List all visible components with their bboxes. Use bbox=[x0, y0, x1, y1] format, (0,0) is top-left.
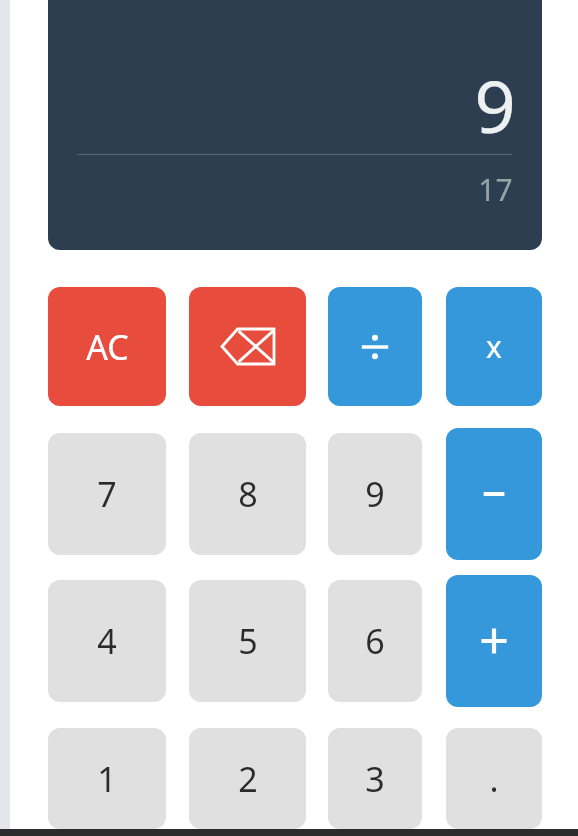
staticText: x bbox=[486, 326, 502, 367]
staticText: 7 bbox=[97, 471, 117, 517]
staticText: 9 bbox=[365, 471, 385, 517]
button[interactable]: Plus bbox=[446, 575, 542, 707]
staticText: 4 bbox=[97, 618, 117, 664]
staticText: 8 bbox=[238, 471, 258, 517]
button[interactable]: 1 bbox=[48, 728, 166, 829]
staticText: AC bbox=[86, 324, 129, 370]
button[interactable]: 8 bbox=[189, 433, 306, 555]
staticText: 9 bbox=[474, 56, 516, 154]
button[interactable]: 7 bbox=[48, 433, 166, 555]
staticText: 2 bbox=[238, 756, 258, 802]
button[interactable]: 5 bbox=[189, 580, 306, 702]
button[interactable]: x bbox=[446, 287, 542, 406]
button[interactable]: 9 bbox=[328, 433, 422, 555]
staticText: 1 bbox=[97, 756, 117, 802]
button[interactable]: 3 bbox=[328, 728, 422, 829]
button[interactable]: Divide bbox=[328, 287, 422, 406]
button[interactable]: Minus bbox=[446, 428, 542, 560]
staticText: 6 bbox=[365, 618, 385, 664]
button[interactable]: 4 bbox=[48, 580, 166, 702]
button[interactable]: . bbox=[446, 728, 542, 829]
staticText: . bbox=[489, 756, 499, 802]
button[interactable]: 6 bbox=[328, 580, 422, 702]
button[interactable]: Backspace bbox=[189, 287, 306, 406]
button[interactable]: 2 bbox=[189, 728, 306, 829]
staticText: 3 bbox=[365, 756, 385, 802]
staticText: 17 bbox=[478, 169, 513, 210]
button[interactable]: AC bbox=[48, 287, 166, 406]
staticText: 5 bbox=[238, 618, 258, 664]
